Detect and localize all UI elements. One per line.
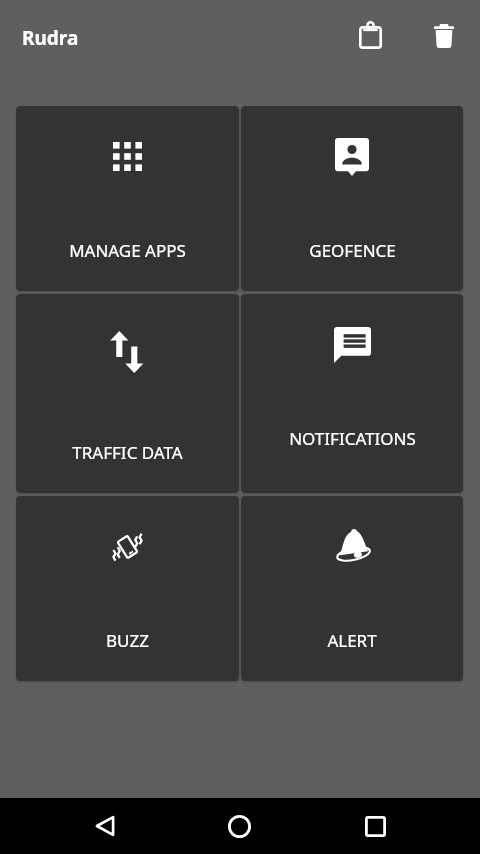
- staticText: MANAGE APPS: [69, 239, 186, 262]
- button[interactable]: ALERT: [241, 496, 463, 681]
- button[interactable]: Clipboard: [346, 12, 394, 60]
- button[interactable]: Recents: [351, 802, 399, 850]
- staticText: ALERT: [327, 629, 377, 652]
- button[interactable]: NOTIFICATIONS: [241, 294, 463, 493]
- staticText: GEOFENCE: [309, 239, 396, 262]
- staticText: TRAFFIC DATA: [72, 441, 183, 464]
- staticText: Rudra: [22, 25, 79, 51]
- button[interactable]: BUZZ: [16, 496, 239, 681]
- button[interactable]: GEOFENCE: [241, 106, 463, 291]
- staticText: NOTIFICATIONS: [289, 427, 416, 450]
- button[interactable]: Back: [81, 802, 129, 850]
- staticText: BUZZ: [106, 629, 149, 652]
- button[interactable]: Home: [215, 802, 263, 850]
- button[interactable]: Delete: [420, 12, 468, 60]
- button[interactable]: MANAGE APPS: [16, 106, 239, 291]
- button[interactable]: TRAFFIC DATA: [16, 294, 239, 493]
